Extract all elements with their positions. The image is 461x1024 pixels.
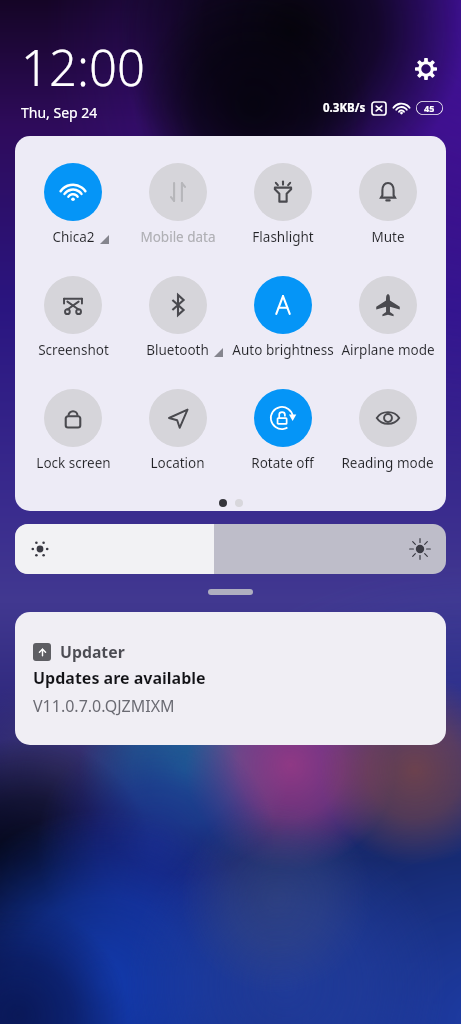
staticText: Updater bbox=[60, 641, 125, 663]
staticText: Chica2 bbox=[52, 228, 95, 246]
staticText: Thu, Sep 24 bbox=[21, 103, 98, 122]
staticText: Bluetooth bbox=[146, 341, 209, 359]
button[interactable]: Screenshot bbox=[21, 249, 125, 362]
staticText: 0.3KB/s bbox=[323, 100, 366, 116]
staticText: Lock screen bbox=[36, 454, 111, 472]
staticText: Auto brightness bbox=[232, 341, 334, 359]
button[interactable]: Mute bbox=[335, 136, 440, 249]
button[interactable]: Mobile data bbox=[125, 136, 230, 249]
staticText: Location bbox=[150, 454, 205, 472]
button[interactable]: Updater bbox=[15, 612, 446, 745]
button[interactable]: Lock screen bbox=[21, 362, 125, 475]
button[interactable]: Reading mode bbox=[335, 362, 440, 475]
button[interactable]: Flashlight bbox=[230, 136, 335, 249]
staticText: Rotate off bbox=[251, 454, 314, 472]
staticText: Mobile data bbox=[140, 228, 216, 246]
staticText: Airplane mode bbox=[341, 341, 435, 359]
button[interactable]: Rotate off bbox=[230, 362, 335, 475]
staticText: Screenshot bbox=[38, 341, 109, 359]
staticText: Reading mode bbox=[341, 454, 434, 472]
button[interactable]: Settings bbox=[409, 52, 443, 86]
staticText: Mute bbox=[371, 228, 405, 246]
staticText: Flashlight bbox=[252, 228, 314, 246]
button[interactable]: Brightness bbox=[15, 524, 446, 574]
button[interactable]: Bluetooth bbox=[125, 249, 230, 362]
button[interactable]: Chica2 bbox=[21, 136, 125, 249]
button[interactable]: Auto brightness bbox=[230, 249, 335, 362]
button[interactable]: Location bbox=[125, 362, 230, 475]
button[interactable]: Airplane mode bbox=[335, 249, 440, 362]
staticText: 45 bbox=[424, 102, 435, 114]
staticText: V11.0.7.0.QJZMIXM bbox=[33, 695, 175, 717]
staticText: Updates are available bbox=[33, 667, 206, 689]
staticText: 12:00 bbox=[21, 34, 145, 101]
